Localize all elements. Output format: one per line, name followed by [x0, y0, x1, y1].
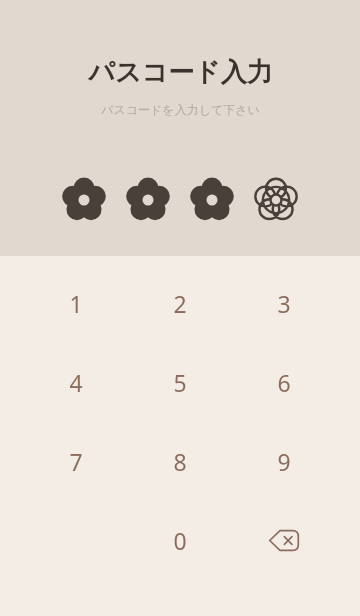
staticText: 1	[69, 288, 83, 319]
staticText: 9	[277, 446, 291, 477]
staticText: 0	[173, 525, 187, 556]
button[interactable]: 3	[232, 267, 336, 339]
staticText: 6	[277, 367, 291, 398]
button[interactable]: 2	[128, 267, 232, 339]
button[interactable]: Backspace	[232, 504, 336, 576]
button[interactable]: 9	[232, 425, 336, 497]
button[interactable]: 8	[128, 425, 232, 497]
button[interactable]: 6	[232, 346, 336, 418]
staticText: 5	[173, 367, 187, 398]
staticText: パスコードを入力して下さい	[101, 102, 260, 117]
button[interactable]: 5	[128, 346, 232, 418]
staticText: 4	[69, 367, 83, 398]
staticText: 8	[173, 446, 187, 477]
staticText: 3	[277, 288, 291, 319]
button[interactable]: 7	[24, 425, 128, 497]
staticText: パスコード入力	[88, 56, 273, 89]
staticText: 2	[173, 288, 187, 319]
button[interactable]: 4	[24, 346, 128, 418]
staticText: 7	[69, 446, 83, 477]
button[interactable]: 0	[128, 504, 232, 576]
button[interactable]: 1	[24, 267, 128, 339]
